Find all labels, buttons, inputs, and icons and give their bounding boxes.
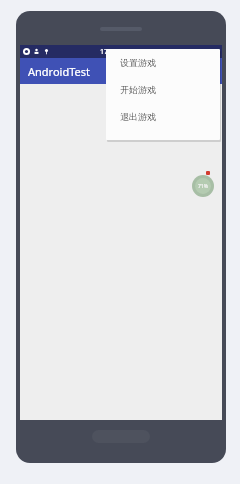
staticText: 17:32 <box>100 47 118 57</box>
staticText: 设置游戏 <box>120 57 156 68</box>
button[interactable]: 开始游戏 <box>106 76 220 103</box>
staticText: AndroidTest <box>28 64 90 79</box>
button[interactable]: 退出游戏 <box>106 103 220 130</box>
staticText: 开始游戏 <box>120 84 156 95</box>
staticText: 退出游戏 <box>120 111 156 122</box>
button[interactable]: 设置游戏 <box>106 49 220 76</box>
button[interactable]: Floating assistant <box>192 175 214 197</box>
staticText: 71% <box>198 183 208 190</box>
